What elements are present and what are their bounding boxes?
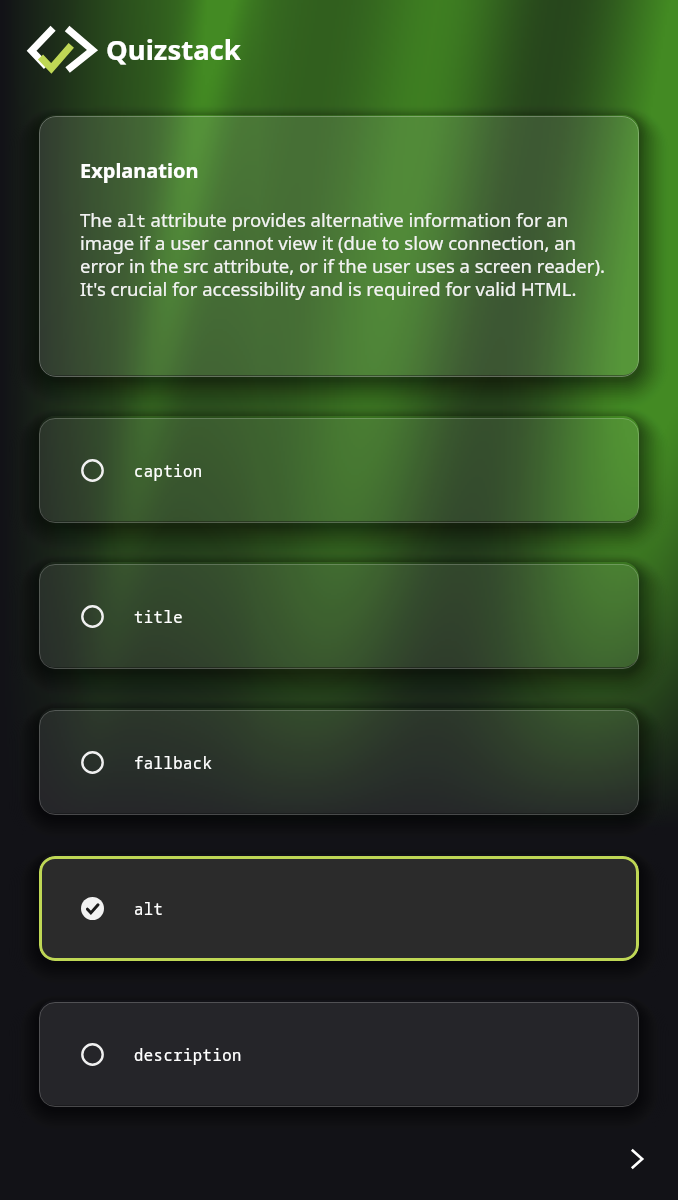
staticText: alt [134,898,164,919]
staticText: Explanation [80,157,199,184]
staticText: Quizstack [106,31,241,68]
staticText: fallback [134,752,213,773]
button[interactable]: title [39,564,639,669]
button[interactable]: caption [39,418,639,523]
staticText: The alt attribute provides alternative i… [80,207,611,301]
button[interactable]: Next question [617,1139,657,1179]
button[interactable]: alt [39,856,639,961]
button[interactable]: description [39,1002,639,1107]
staticText: title [134,606,184,627]
button[interactable]: fallback [39,710,639,815]
staticText: description [134,1044,242,1065]
staticText: caption [134,460,203,481]
